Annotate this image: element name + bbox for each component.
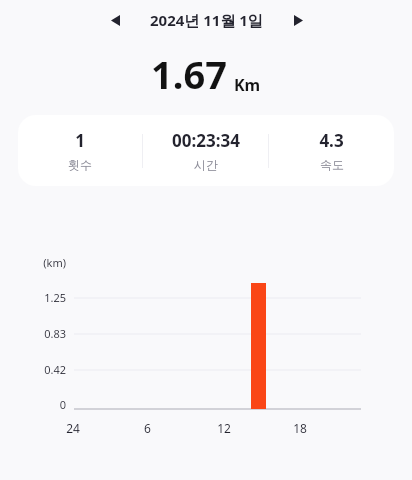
button[interactable]: 1 (18, 129, 142, 172)
staticText: 12 (217, 420, 231, 436)
staticText: 6 (144, 420, 151, 436)
staticText: 1.25 (44, 290, 66, 305)
staticText: 1 (75, 129, 85, 152)
staticText: 속도 (320, 157, 344, 172)
staticText: 4.3 (319, 129, 344, 152)
staticText: 시간 (194, 157, 218, 172)
button[interactable]: Next day (285, 7, 311, 33)
staticText: 24 (66, 420, 80, 436)
button[interactable]: Previous day (102, 7, 128, 33)
button[interactable]: 4.3 (269, 129, 394, 172)
button[interactable]: 00:23:34 (143, 129, 268, 172)
staticText: 0 (59, 397, 66, 412)
staticText: Km (234, 74, 261, 96)
staticText: 1.67 (151, 48, 227, 100)
staticText: 18 (293, 420, 307, 436)
staticText: 횟수 (68, 157, 92, 172)
staticText: 0.83 (44, 326, 66, 341)
staticText: 0.42 (44, 362, 66, 377)
staticText: (km) (43, 255, 66, 270)
staticText: 00:23:34 (172, 129, 240, 152)
staticText: 2024년 11월 1일 (150, 10, 263, 30)
